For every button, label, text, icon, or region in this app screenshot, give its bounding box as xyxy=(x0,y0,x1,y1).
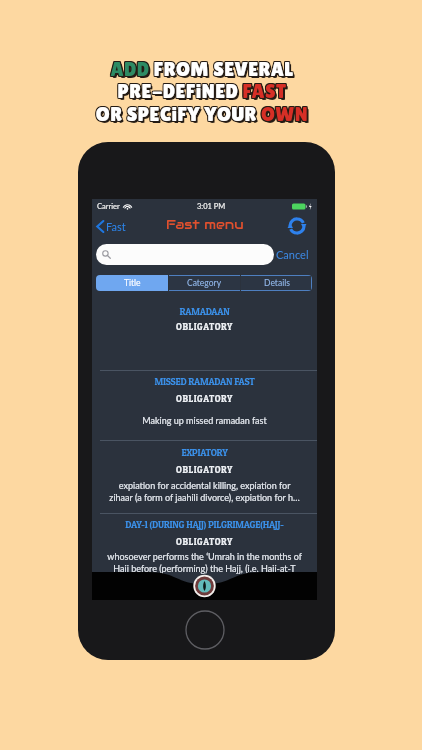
staticText: PRE-DEFiNED FAST xyxy=(0,82,415,105)
staticText: OBLIGATORY xyxy=(92,321,317,332)
button[interactable]: RAMADAAN xyxy=(92,292,317,371)
staticText: PRE-DEFiNED FAST xyxy=(0,80,412,103)
staticText: PRE-DEFiNED FAST xyxy=(0,80,414,103)
staticText: Category xyxy=(187,278,222,288)
staticText: PRE-DEFiNED FAST xyxy=(0,81,414,104)
button[interactable]: MISSED RAMADAN FAST xyxy=(92,371,317,441)
staticText: OBLIGATORY xyxy=(92,393,317,404)
button[interactable]: EXPIATORY xyxy=(92,441,317,514)
staticText: OR SPECiFY YOUR OWN xyxy=(0,104,412,127)
staticText: PRE-DEFiNED FAST xyxy=(0,80,413,103)
staticText: OR SPECiFY YOUR OWN xyxy=(0,102,413,125)
staticText: PRE-DEFiNED FAST xyxy=(0,81,412,104)
staticText: EXPIATORY xyxy=(95,447,314,459)
staticText: whosoever performs the ‘Umrah in the mon… xyxy=(106,551,303,574)
staticText: expiation for accidental killing, expiat… xyxy=(106,480,303,503)
staticText: Title xyxy=(124,278,141,288)
button[interactable]: Refresh xyxy=(287,216,307,236)
staticText: PRE-DEFiNED FAST xyxy=(0,81,413,104)
staticText: PRE-DEFiNED FAST xyxy=(0,79,412,102)
staticText: Cancel xyxy=(276,248,309,261)
staticText: ADD FROM SEVERAL xyxy=(0,58,414,81)
staticText: OBLIGATORY xyxy=(92,536,317,547)
staticText: Details xyxy=(264,278,290,288)
staticText: MISSED RAMADAN FAST xyxy=(95,376,314,388)
staticText: OR SPECiFY YOUR OWN xyxy=(0,104,414,127)
staticText: OR SPECiFY YOUR OWN xyxy=(0,105,415,128)
button[interactable]: Title xyxy=(96,275,168,291)
staticText: ADD FROM SEVERAL xyxy=(0,57,412,80)
button[interactable]: DAY-1 (DURING HAJJ) PILGRIMAGE(HAJJ- xyxy=(92,514,317,588)
staticText: Making up missed ramadan fast xyxy=(106,415,303,426)
staticText: Fast menu xyxy=(166,216,244,233)
staticText: OR SPECiFY YOUR OWN xyxy=(0,103,412,126)
button[interactable]: Category xyxy=(169,275,240,291)
staticText: OR SPECiFY YOUR OWN xyxy=(0,103,413,126)
staticText: 3:01 PM xyxy=(197,202,226,211)
staticText: OR SPECiFY YOUR OWN xyxy=(0,104,413,127)
button[interactable] xyxy=(102,244,274,265)
button[interactable]: Cancel xyxy=(276,248,309,261)
staticText: ADD FROM SEVERAL xyxy=(0,58,413,81)
button[interactable]: Details xyxy=(241,275,312,291)
staticText: RAMADAAN xyxy=(95,306,314,318)
staticText: Carrier xyxy=(97,202,120,211)
staticText: OBLIGATORY xyxy=(92,464,317,475)
staticText: ADD FROM SEVERAL xyxy=(0,59,413,82)
staticText: ADD FROM SEVERAL xyxy=(0,57,414,80)
staticText: ADD FROM SEVERAL xyxy=(0,60,415,83)
staticText: OR SPECiFY YOUR OWN xyxy=(0,102,412,125)
staticText: ADD FROM SEVERAL xyxy=(0,58,412,81)
staticText: PRE-DEFiNED FAST xyxy=(0,79,413,102)
staticText: ADD FROM SEVERAL xyxy=(0,59,412,82)
staticText: PRE-DEFiNED FAST xyxy=(0,79,414,102)
staticText: ADD FROM SEVERAL xyxy=(0,59,414,82)
staticText: OR SPECiFY YOUR OWN xyxy=(0,103,414,126)
button[interactable]: Fast xyxy=(96,220,126,233)
staticText: Fast xyxy=(106,220,126,233)
staticText: ADD FROM SEVERAL xyxy=(0,57,413,80)
staticText: OR SPECiFY YOUR OWN xyxy=(0,102,414,125)
staticText: DAY-1 (DURING HAJJ) PILGRIMAGE(HAJJ- xyxy=(95,519,314,531)
